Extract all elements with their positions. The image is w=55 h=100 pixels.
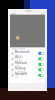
staticText: Handoff xyxy=(15,72,27,76)
staticText: 9:41 xyxy=(11,12,16,15)
button[interactable]: AirDrop xyxy=(10,67,45,73)
staticText: ▪▪▪ xyxy=(41,12,44,15)
staticText: AirDrop xyxy=(15,66,26,70)
staticText: Everyone xyxy=(15,70,25,73)
staticText: Bluetooth xyxy=(15,50,30,54)
staticText: Hotspot xyxy=(15,61,27,65)
staticText: Wi-Fi xyxy=(15,55,23,59)
staticText: On xyxy=(15,54,18,57)
staticText: Home xyxy=(15,59,22,62)
staticText: Off xyxy=(15,65,19,68)
staticText: On xyxy=(15,76,18,79)
button[interactable]: Hotspot xyxy=(10,62,45,67)
button[interactable]: Bluetooth xyxy=(10,51,45,56)
button[interactable]: Wi-Fi xyxy=(10,56,45,62)
button[interactable]: Handoff xyxy=(10,73,45,78)
staticText: SETTINGS xyxy=(11,48,25,50)
